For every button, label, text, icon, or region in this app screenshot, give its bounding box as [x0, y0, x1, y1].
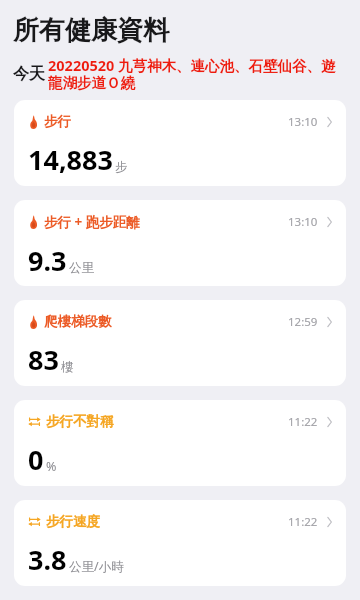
staticText: 13:10: [288, 114, 318, 130]
staticText: 20220520 九芎神木、連心池、石壁仙谷、遊龍湖步道Ｏ繞: [48, 55, 350, 93]
button[interactable]: 步行速度: [14, 500, 346, 586]
staticText: 樓: [61, 359, 74, 375]
staticText: 步: [115, 159, 128, 175]
staticText: 12:59: [288, 314, 318, 330]
staticText: 步行 + 跑步距離: [44, 213, 140, 231]
button[interactable]: 爬樓梯段數: [14, 300, 346, 386]
button[interactable]: 步行: [14, 100, 346, 186]
staticText: 步行: [44, 113, 71, 130]
staticText: 83: [28, 341, 59, 378]
staticText: 公里: [69, 260, 94, 276]
staticText: 公里/小時: [69, 558, 124, 575]
staticText: 13:10: [288, 214, 318, 230]
staticText: 所有健康資料: [13, 14, 169, 47]
staticText: 9.3: [28, 242, 67, 279]
button[interactable]: 步行 + 跑步距離: [14, 200, 346, 286]
staticText: 步行速度: [46, 513, 100, 530]
staticText: 今天: [13, 64, 45, 84]
staticText: 步行不對稱: [46, 413, 114, 430]
staticText: 0: [28, 441, 44, 478]
staticText: 爬樓梯段數: [44, 313, 112, 330]
button[interactable]: 步行不對稱: [14, 400, 346, 486]
staticText: %: [46, 458, 57, 475]
staticText: 3.8: [28, 541, 67, 578]
staticText: 14,883: [28, 141, 113, 178]
staticText: 11:22: [288, 414, 318, 430]
staticText: 11:22: [288, 514, 318, 530]
